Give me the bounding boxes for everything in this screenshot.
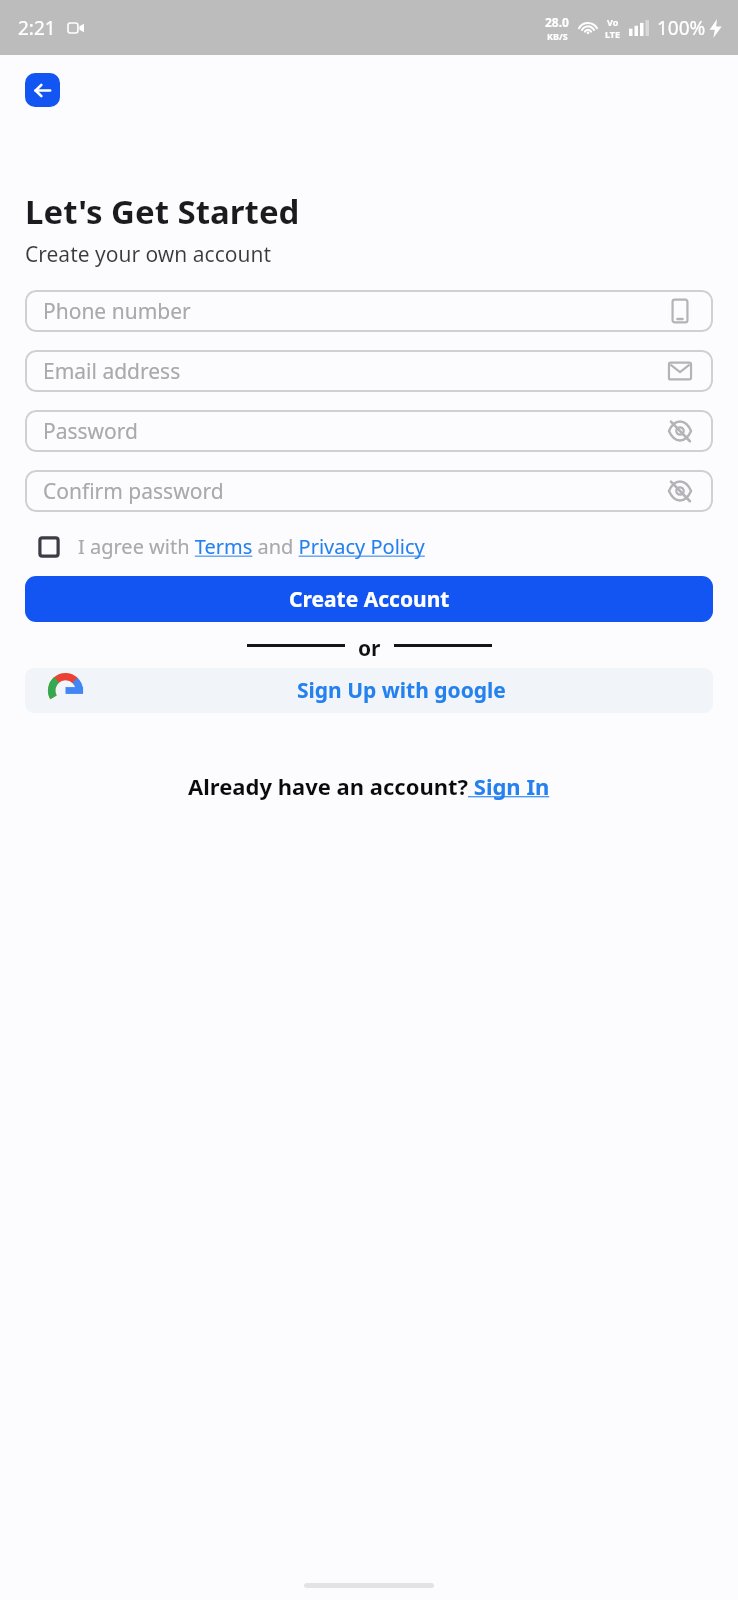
staticText: Password: [43, 417, 138, 446]
staticText: 28.0: [545, 14, 569, 30]
staticText: 2:21: [18, 15, 56, 41]
staticText: Email address: [43, 357, 181, 386]
staticText: 100%: [657, 15, 706, 41]
staticText: or: [358, 634, 381, 656]
staticText: Already have an account? Sign In: [188, 771, 550, 801]
button[interactable]: Back: [25, 73, 60, 107]
staticText: I agree with Terms and Privacy Policy: [78, 533, 425, 560]
button[interactable]: Create Account: [25, 576, 713, 622]
staticText: Vo: [607, 16, 619, 28]
button[interactable]: Password: [25, 410, 713, 452]
staticText: Let's Get Started: [25, 189, 300, 234]
staticText: Confirm password: [43, 477, 224, 506]
staticText: Create Account: [289, 585, 450, 614]
button[interactable]: Sign Up with google: [25, 668, 713, 713]
staticText: LTE: [605, 28, 621, 40]
staticText: Phone number: [43, 297, 191, 326]
staticText: KB/S: [547, 30, 568, 42]
staticText: Sign Up with google: [297, 676, 506, 705]
button[interactable]: Email address: [25, 350, 713, 392]
button[interactable]: I agree with Terms and Privacy Policy: [25, 533, 713, 560]
button[interactable]: Confirm password: [25, 470, 713, 512]
button[interactable]: Already have an account? Sign In: [188, 771, 550, 801]
staticText: Create your own account: [25, 240, 271, 269]
button[interactable]: Phone number: [25, 290, 713, 332]
